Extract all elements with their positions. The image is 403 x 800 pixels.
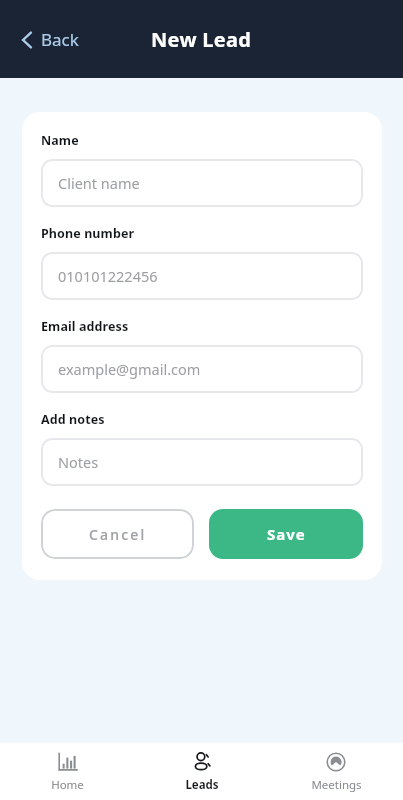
other: Leads <box>191 751 213 773</box>
button[interactable]: Leads <box>135 746 269 798</box>
staticText: 010101222456 <box>58 266 158 286</box>
staticText: Cancel <box>89 525 147 544</box>
staticText: Email address <box>41 318 129 335</box>
button[interactable]: example@gmail.com <box>41 345 363 393</box>
button[interactable]: Client name <box>41 159 363 207</box>
staticText: Phone number <box>41 225 135 242</box>
staticText: Meetings <box>311 777 362 793</box>
button[interactable]: Notes <box>41 438 363 486</box>
button[interactable]: Save <box>209 509 363 559</box>
button[interactable]: Back <box>14 22 85 57</box>
staticText: Notes <box>58 452 99 472</box>
staticText: Leads <box>185 777 219 793</box>
staticText: Add notes <box>41 411 105 428</box>
staticText: Name <box>41 132 79 149</box>
button[interactable]: Home <box>0 746 135 798</box>
other: Home <box>57 751 79 773</box>
staticText: example@gmail.com <box>58 359 201 379</box>
button[interactable]: 010101222456 <box>41 252 363 300</box>
staticText: New Lead <box>151 26 252 53</box>
staticText: Back <box>41 28 79 51</box>
staticText: Save <box>267 524 306 544</box>
button[interactable]: Cancel <box>41 509 194 559</box>
staticText: Home <box>51 777 84 793</box>
other: Meetings <box>325 751 347 773</box>
staticText: Client name <box>58 173 140 193</box>
button[interactable]: Meetings <box>269 746 403 798</box>
